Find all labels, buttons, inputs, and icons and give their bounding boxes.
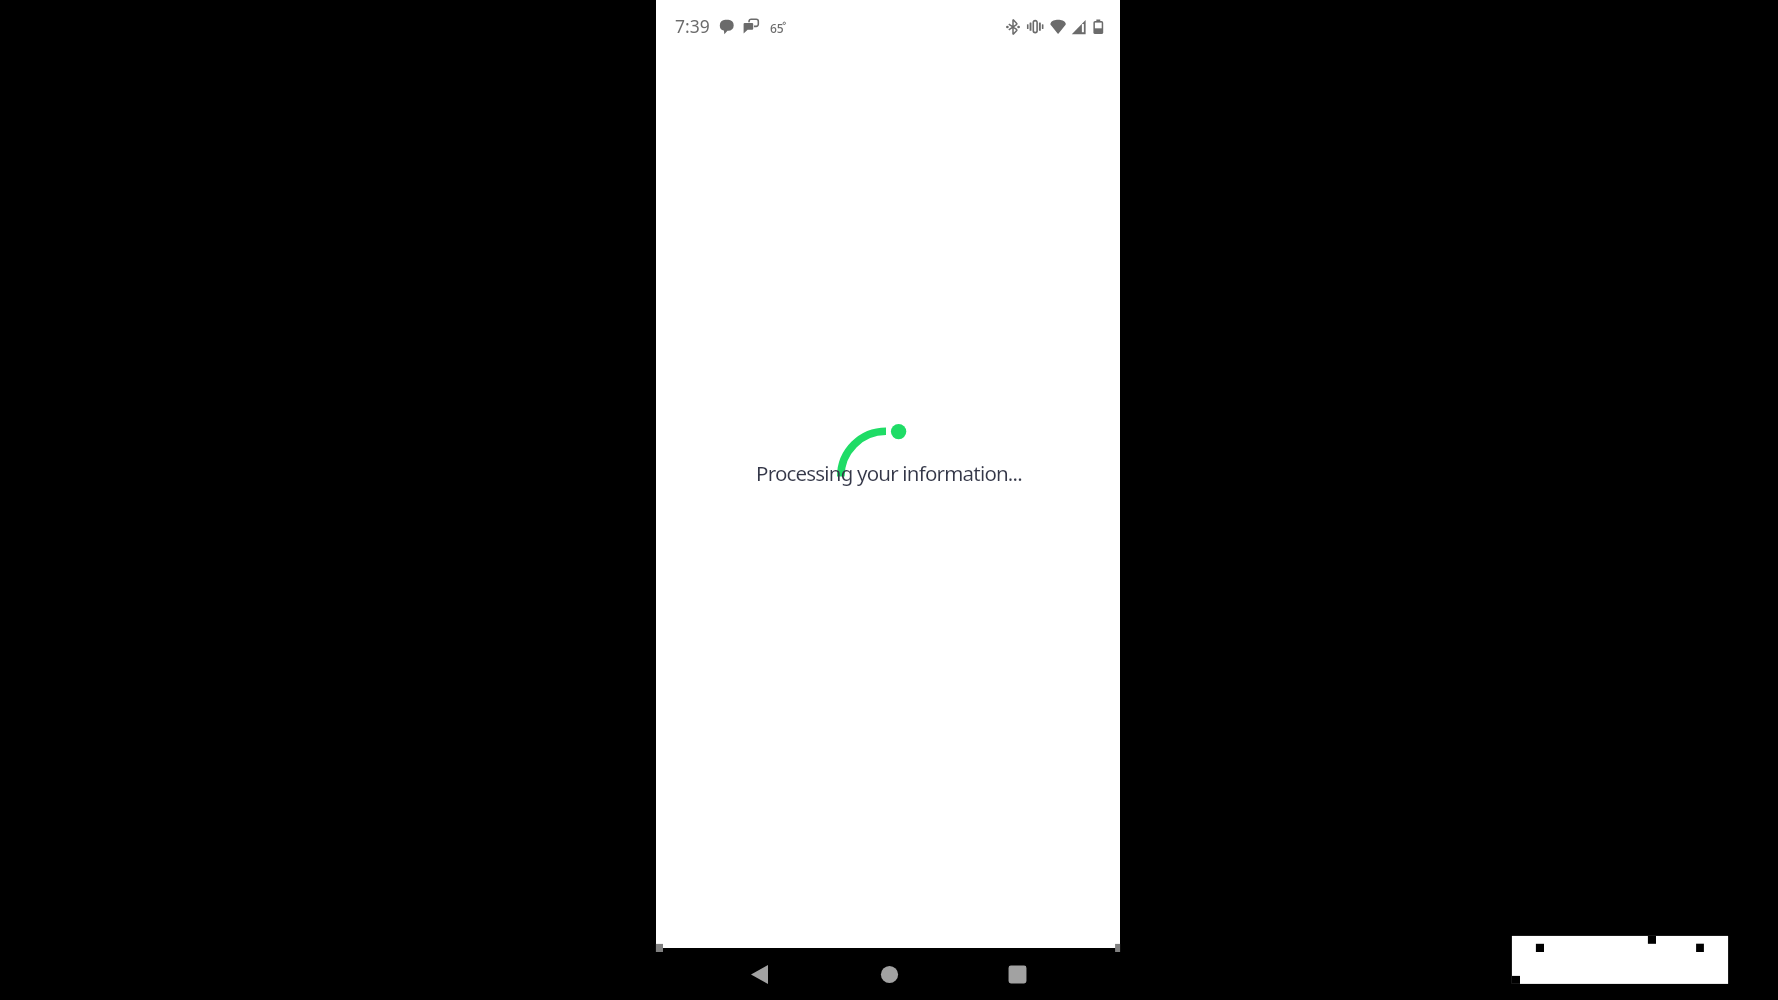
- staticText: 7:39: [675, 14, 710, 38]
- staticText: Processing your information...: [756, 459, 1022, 487]
- button[interactable]: Back: [735, 950, 783, 998]
- button[interactable]: Recents: [993, 950, 1041, 998]
- button[interactable]: Home: [865, 950, 913, 998]
- staticText: 65: [770, 20, 784, 36]
